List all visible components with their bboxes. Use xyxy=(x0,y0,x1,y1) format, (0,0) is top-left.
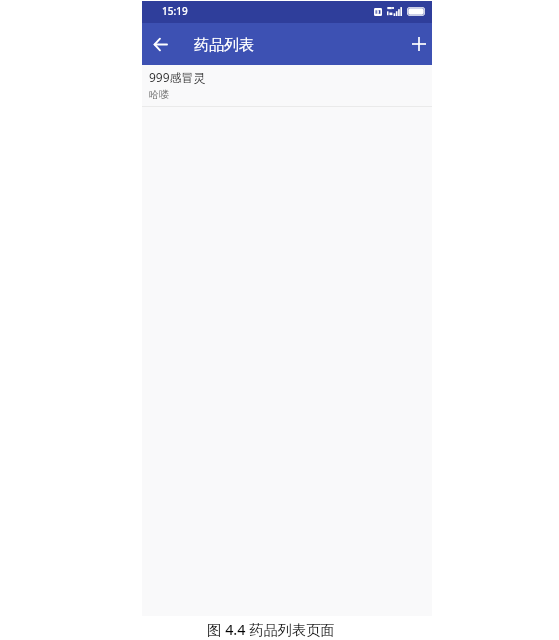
button[interactable]: 999感冒灵 xyxy=(142,65,432,107)
staticText: 哈喽 xyxy=(149,88,169,101)
button[interactable]: Back xyxy=(144,28,176,60)
staticText: 15:19 xyxy=(162,4,188,18)
staticText: 图 4.4 药品列表页面 xyxy=(207,620,335,640)
staticText: 药品列表 xyxy=(194,36,254,55)
button[interactable]: Add xyxy=(403,28,435,60)
staticText: 999感冒灵 xyxy=(149,69,206,85)
